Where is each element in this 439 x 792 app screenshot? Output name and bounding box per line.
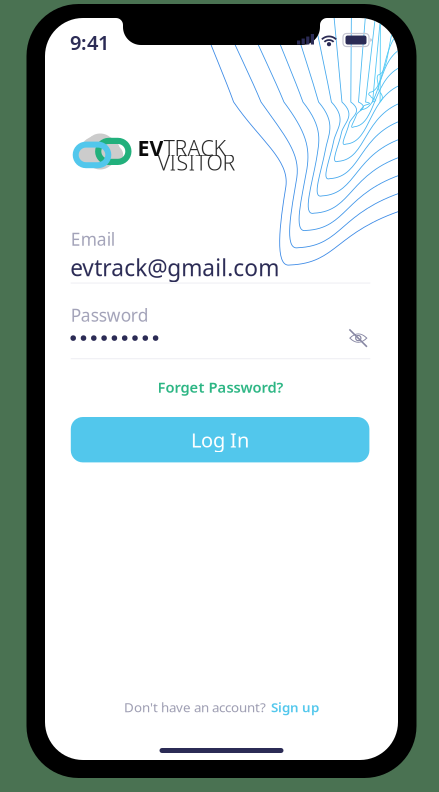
staticText: Don't have an account? <box>124 698 266 716</box>
staticText: evtrack@gmail.com <box>70 252 279 283</box>
button[interactable]: Log In <box>71 417 369 462</box>
staticText: VISITOR <box>157 148 235 176</box>
staticText: Password <box>71 303 149 326</box>
button[interactable]: Sign up <box>271 698 319 716</box>
staticText: Forget Password? <box>157 377 283 397</box>
staticText: 9:41 <box>70 29 109 56</box>
staticText: EV <box>137 133 163 162</box>
staticText: Sign up <box>271 698 319 716</box>
staticText: Email <box>71 227 115 250</box>
staticText: TRACK <box>163 133 226 162</box>
button[interactable]: Hide password <box>348 329 368 348</box>
button[interactable]: Forget Password? <box>71 376 370 398</box>
staticText: Log In <box>191 426 249 453</box>
